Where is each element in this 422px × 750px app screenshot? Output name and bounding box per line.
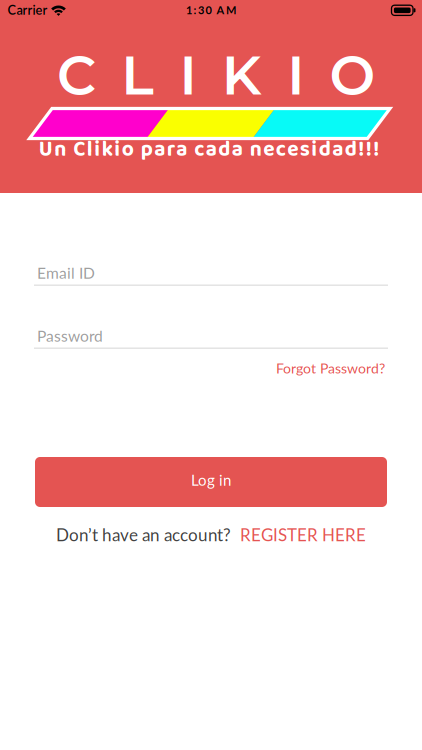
staticText: Log in — [191, 471, 231, 489]
staticText: Don’t have an account? — [56, 524, 231, 545]
staticText: REGISTER HERE — [240, 525, 366, 545]
staticText: L — [121, 42, 154, 108]
staticText: K — [222, 42, 262, 108]
button[interactable]: Log in — [35, 457, 387, 507]
button[interactable]: Password — [34, 317, 388, 349]
button[interactable]: REGISTER HERE — [240, 525, 366, 545]
button[interactable]: Email ID — [34, 254, 388, 286]
staticText: Forgot Password? — [276, 360, 385, 376]
button[interactable]: Forgot Password? — [276, 360, 385, 376]
staticText: O — [329, 42, 375, 108]
staticText: Un Clikio para cada necesidad!!! — [39, 133, 379, 167]
staticText: I — [180, 42, 197, 108]
staticText: 1:30 AM — [186, 3, 236, 17]
staticText: Password — [37, 326, 103, 345]
staticText: Email ID — [37, 263, 95, 282]
staticText: I — [287, 42, 304, 108]
staticText: Carrier — [7, 2, 47, 18]
staticText: C — [57, 42, 96, 108]
